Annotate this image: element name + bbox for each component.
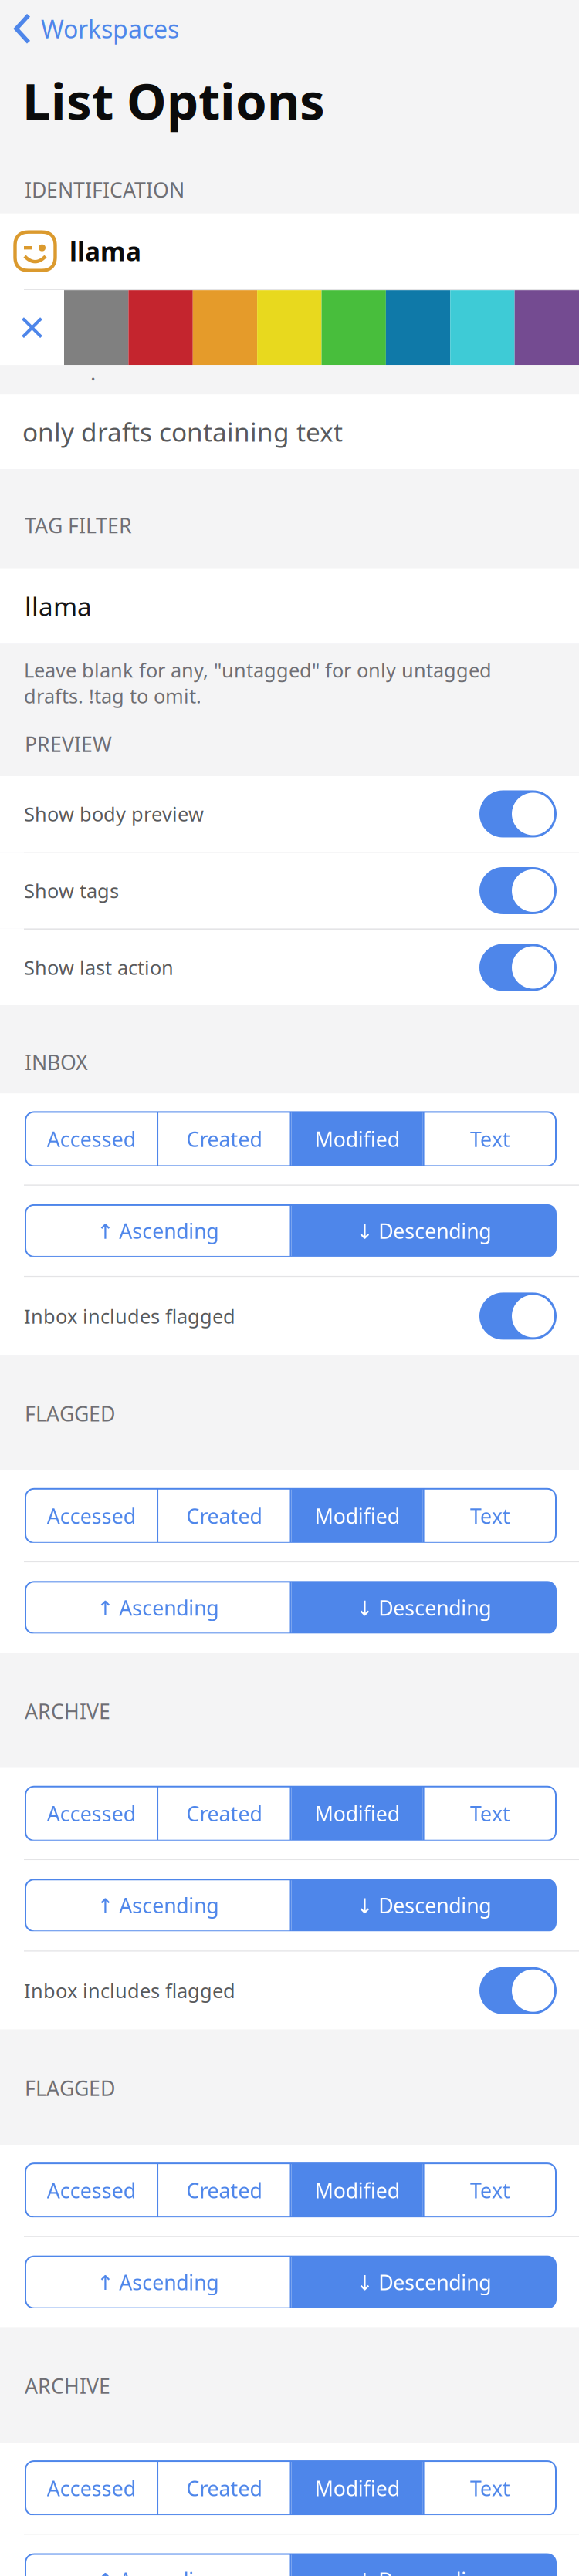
button[interactable]: Created (158, 2461, 290, 2515)
button[interactable]: Colour 4 (257, 290, 322, 365)
staticText: Text (470, 2474, 510, 2502)
button[interactable]: Colour 3 (193, 290, 257, 365)
button[interactable]: Accessed (25, 1489, 157, 1543)
button[interactable]: Colour 2 (128, 290, 193, 365)
button[interactable]: No colour (0, 290, 64, 365)
staticText: Inbox includes flagged (24, 1978, 235, 2004)
staticText: FLAGGED (25, 2074, 115, 2102)
button[interactable]: Modified (291, 2461, 423, 2515)
staticText: Accessed (47, 1125, 136, 1153)
button[interactable]: ↑ Ascending (25, 1205, 290, 1257)
button[interactable]: Workspaces (0, 0, 579, 45)
button[interactable]: Colour 6 (386, 290, 450, 365)
staticText: IDENTIFICATION (25, 176, 185, 203)
button[interactable]: Modified (291, 1489, 423, 1543)
button[interactable]: ↑ Ascending (25, 1582, 290, 1633)
staticText: Text (470, 1502, 510, 1529)
button[interactable]: Text (424, 1787, 556, 1841)
staticText: FLAGGED (25, 1400, 115, 1427)
button[interactable]: Text (424, 2163, 556, 2217)
button[interactable]: ↓ Descending (291, 1582, 556, 1633)
staticText: ARCHIVE (25, 1698, 110, 1725)
button[interactable]: Modified (291, 1787, 423, 1841)
staticText: Created (186, 1502, 262, 1529)
staticText: Created (186, 2474, 262, 2502)
button[interactable]: Created (158, 1112, 290, 1166)
staticText: Modified (315, 2177, 400, 2204)
button[interactable]: ↑ Ascending (25, 2554, 290, 2576)
button[interactable]: Colour 7 (450, 290, 515, 365)
button[interactable]: Text (424, 2461, 556, 2515)
button[interactable]: Accessed (25, 1787, 157, 1841)
button[interactable]: Colour 8 (515, 290, 579, 365)
button[interactable]: Colour 5 (322, 290, 386, 365)
staticText: ↓ Descending (356, 1892, 491, 1919)
staticText: ↑ Ascending (97, 1892, 219, 1919)
staticText: List Options (22, 67, 325, 134)
staticText: Workspaces (41, 12, 179, 45)
button[interactable]: ↑ Ascending (25, 2256, 290, 2308)
button[interactable]: Accessed (25, 2163, 157, 2217)
staticText: Inbox includes flagged (24, 1303, 235, 1329)
button[interactable]: Inbox includes flagged (0, 1952, 579, 2030)
staticText: Show body preview (24, 801, 204, 827)
staticText: PREVIEW (25, 730, 112, 758)
staticText: Leave blank for any, "untagged" for only… (24, 657, 492, 709)
staticText: Accessed (47, 2474, 136, 2502)
button[interactable]: Text (424, 1489, 556, 1543)
button[interactable]: Show body preview (0, 776, 579, 852)
button[interactable]: Created (158, 1787, 290, 1841)
staticText: INBOX (25, 1048, 88, 1076)
button[interactable]: Created (158, 1489, 290, 1543)
button[interactable]: Text (424, 1112, 556, 1166)
staticText: Accessed (47, 1502, 136, 1529)
button[interactable]: Show tags (0, 853, 579, 928)
button[interactable]: ↓ Descending (291, 1880, 556, 1931)
staticText: Created (186, 1125, 262, 1153)
button[interactable]: ↓ Descending (291, 2554, 556, 2576)
staticText: Accessed (47, 2177, 136, 2204)
button[interactable]: Accessed (25, 2461, 157, 2515)
staticText: only drafts containing text (22, 415, 343, 449)
button[interactable]: Colour 1 (64, 290, 128, 365)
staticText: Modified (315, 2474, 400, 2502)
button[interactable]: Inbox includes flagged (0, 1277, 579, 1355)
button[interactable]: Created (158, 2163, 290, 2217)
staticText: llama (25, 589, 92, 623)
staticText: Modified (315, 1125, 400, 1153)
staticText: Show tags (24, 878, 119, 904)
button[interactable]: Modified (291, 2163, 423, 2217)
staticText: Modified (315, 1800, 400, 1827)
staticText: ↑ Ascending (97, 2268, 219, 2296)
staticText: · (90, 365, 96, 392)
button[interactable]: Accessed (25, 1112, 157, 1166)
staticText: Modified (315, 1502, 400, 1529)
staticText: ↓ Descending (356, 2566, 491, 2576)
staticText: Text (470, 1125, 510, 1153)
staticText: Created (186, 2177, 262, 2204)
staticText: llama (69, 234, 141, 268)
staticText: ↓ Descending (356, 1594, 491, 1621)
staticText: TAG FILTER (25, 512, 132, 539)
staticText: Text (470, 2177, 510, 2204)
button[interactable]: Modified (291, 1112, 423, 1166)
staticText: ↑ Ascending (97, 2566, 219, 2576)
staticText: Show last action (24, 954, 174, 980)
button[interactable]: Show last action (0, 930, 579, 1005)
staticText: ↓ Descending (356, 1217, 491, 1244)
button[interactable]: ↓ Descending (291, 2256, 556, 2308)
staticText: Accessed (47, 1800, 136, 1827)
staticText: ↑ Ascending (97, 1594, 219, 1621)
button[interactable]: ↑ Ascending (25, 1880, 290, 1931)
staticText: ARCHIVE (25, 2372, 110, 2399)
staticText: ↑ Ascending (97, 1217, 219, 1244)
staticText: Text (470, 1800, 510, 1827)
staticText: Created (186, 1800, 262, 1827)
button[interactable]: ↓ Descending (291, 1205, 556, 1257)
staticText: ↓ Descending (356, 2268, 491, 2296)
